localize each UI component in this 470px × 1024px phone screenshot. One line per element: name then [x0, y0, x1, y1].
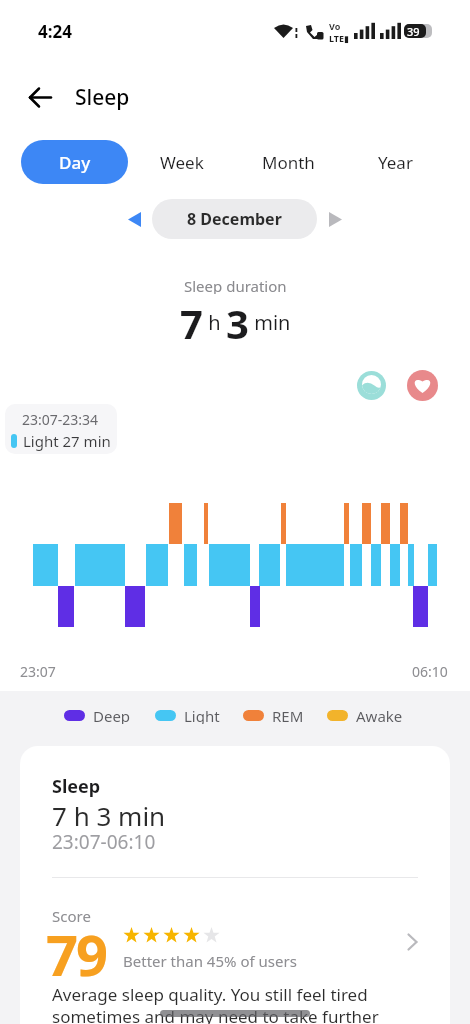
staticText: 79: [46, 916, 107, 984]
staticText: Light 27 min: [23, 431, 111, 451]
staticText: 06:10: [412, 662, 448, 678]
staticText: REM: [272, 706, 304, 724]
staticText: 4:24: [38, 20, 72, 43]
button[interactable]: [407, 370, 438, 401]
staticText: 3: [226, 296, 249, 342]
staticText: Week: [160, 151, 204, 174]
staticText: 7 h 3 min: [52, 798, 166, 828]
button[interactable]: Day: [21, 140, 128, 184]
staticText: LTE▮: [329, 32, 350, 44]
button[interactable]: Month: [236, 140, 340, 184]
staticText: Sleep: [52, 774, 101, 798]
staticText: Light: [184, 706, 220, 724]
button[interactable]: 8 December: [152, 199, 317, 239]
staticText: 23:07-06:10: [52, 829, 156, 851]
button[interactable]: Score: [52, 906, 418, 974]
button[interactable]: Week: [128, 140, 236, 184]
staticText: Day: [59, 151, 91, 174]
staticText: Year: [378, 151, 413, 174]
staticText: Awake: [356, 706, 403, 724]
button[interactable]: [357, 371, 386, 400]
staticText: 23:07-23:34: [22, 410, 99, 429]
button[interactable]: [24, 81, 56, 113]
staticText: 7: [180, 296, 203, 342]
staticText: Vo: [329, 20, 341, 32]
staticText: Sleep duration: [184, 276, 287, 294]
staticText: min: [249, 309, 291, 336]
button[interactable]: [329, 212, 342, 227]
staticText: Deep: [93, 706, 131, 724]
staticText: Better than 45% of users: [123, 951, 297, 969]
staticText: 23:07: [20, 662, 56, 678]
staticText: Score: [52, 906, 91, 924]
staticText: Average sleep quality. You still feel ti…: [52, 983, 418, 1024]
staticText: Sleep: [75, 83, 130, 112]
staticText: 8 December: [187, 208, 282, 230]
staticText: 39: [407, 24, 420, 39]
button[interactable]: [128, 212, 141, 227]
staticText: h: [203, 309, 226, 336]
button[interactable]: Year: [340, 140, 450, 184]
staticText: Month: [262, 151, 315, 174]
